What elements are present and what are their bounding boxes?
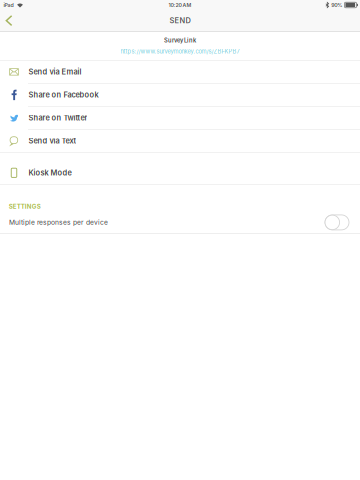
staticText: Survey Link	[164, 37, 196, 44]
staticText: SETTINGS	[9, 203, 41, 210]
staticText: iPad	[4, 2, 14, 8]
staticText: Share on Facebook	[28, 90, 98, 99]
staticText: SEND	[169, 16, 190, 25]
button[interactable]: Back	[0, 10, 18, 31]
staticText: Send via Text	[28, 136, 76, 145]
staticText: 90%	[331, 2, 342, 8]
staticText: Multiple responses per device	[9, 218, 108, 226]
button[interactable]: Send via Email	[0, 61, 360, 83]
button[interactable]: Share on Twitter	[0, 107, 360, 129]
button[interactable]: Multiple responses per device	[0, 212, 360, 233]
button[interactable]: https://www.surveymonkey.com/s/ZBFKPB7	[120, 47, 239, 56]
button[interactable]: Share on Facebook	[0, 84, 360, 106]
staticText: https://www.surveymonkey.com/s/ZBFKPB7	[120, 48, 239, 55]
staticText: Share on Twitter	[28, 113, 87, 122]
staticText: 10:20 AM	[168, 2, 191, 8]
staticText: Send via Email	[28, 67, 81, 76]
button[interactable]: Send via Text	[0, 130, 360, 152]
button[interactable]: Kiosk Mode	[0, 162, 360, 184]
staticText: Kiosk Mode	[28, 168, 71, 177]
